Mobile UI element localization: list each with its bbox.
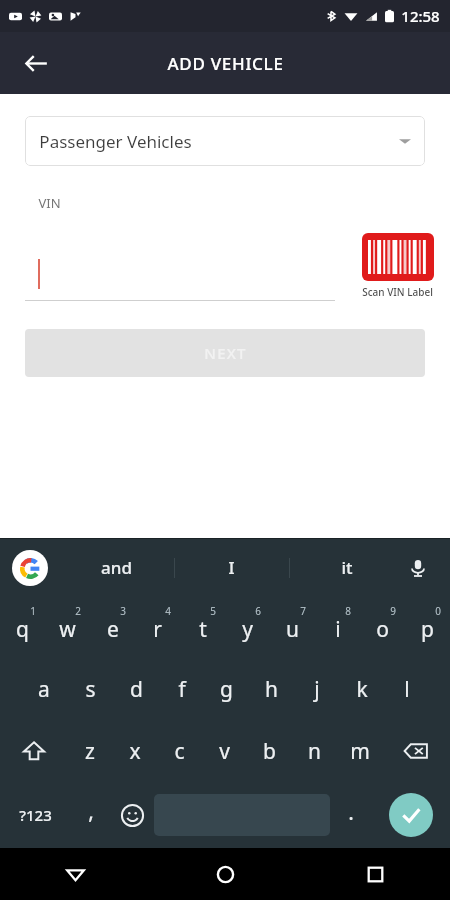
staticText: p (421, 615, 434, 644)
staticText: 0 (435, 604, 441, 618)
staticText: , (88, 797, 94, 826)
staticText: u (286, 615, 299, 644)
button[interactable]: w (45, 596, 90, 658)
staticText: b (263, 737, 276, 766)
staticText: r (153, 615, 162, 644)
button[interactable]: Enter (372, 782, 450, 848)
button[interactable]: x (112, 720, 157, 782)
button[interactable]: , (71, 782, 110, 848)
staticText: and (101, 556, 132, 579)
staticText: ADD VEHICLE (167, 52, 284, 75)
button[interactable]: h (249, 658, 294, 720)
button[interactable]: v (202, 720, 247, 782)
button[interactable]: e (90, 596, 135, 658)
staticText: 5 (210, 604, 216, 618)
button[interactable]: d (113, 658, 159, 720)
button[interactable]: q (0, 596, 45, 658)
button[interactable]: s (67, 658, 113, 720)
button[interactable]: b (247, 720, 292, 782)
staticText: m (350, 737, 370, 766)
staticText: 8 (345, 604, 351, 618)
staticText: Scan VIN Label (362, 285, 433, 299)
button[interactable]: o (360, 596, 405, 658)
staticText: 7 (300, 604, 306, 618)
button[interactable]: r (135, 596, 180, 658)
staticText: t (199, 615, 207, 644)
staticText: a (38, 675, 50, 704)
button[interactable]: Google (12, 550, 48, 586)
button[interactable]: c (157, 720, 202, 782)
button[interactable]: Voice input (398, 548, 438, 588)
button[interactable]: Passenger Vehicles (25, 116, 425, 166)
button[interactable]: and (58, 539, 174, 596)
staticText: c (174, 737, 185, 766)
button[interactable]: g (204, 658, 249, 720)
staticText: VIN (38, 194, 61, 212)
staticText: y (242, 615, 253, 644)
button[interactable]: z (67, 720, 112, 782)
staticText: I (228, 556, 235, 579)
button[interactable]: . (330, 782, 372, 848)
button[interactable]: Backspace (382, 720, 450, 782)
staticText: 9 (390, 604, 396, 618)
button[interactable]: it (289, 539, 404, 596)
staticText: NEXT (204, 343, 247, 363)
button[interactable]: Back (12, 39, 60, 87)
button[interactable]: Recent apps (300, 848, 450, 900)
staticText: f (178, 675, 186, 704)
button[interactable]: Emoji (110, 782, 154, 848)
staticText: j (314, 675, 320, 704)
staticText: o (376, 615, 389, 644)
button[interactable]: Home (150, 848, 300, 900)
button[interactable]: m (337, 720, 382, 782)
button[interactable]: j (294, 658, 339, 720)
staticText: k (356, 675, 368, 704)
button[interactable]: p (405, 596, 450, 658)
button[interactable]: i (315, 596, 360, 658)
staticText: g (220, 675, 233, 704)
staticText: it (341, 556, 353, 579)
staticText: 2 (75, 604, 81, 618)
staticText: n (308, 737, 321, 766)
button[interactable]: a (21, 658, 67, 720)
button[interactable]: f (159, 658, 204, 720)
button[interactable]: k (339, 658, 384, 720)
staticText: 12:58 (401, 6, 440, 26)
staticText: z (85, 737, 95, 766)
staticText: l (404, 675, 410, 704)
staticText: 1 (30, 604, 36, 618)
staticText: 6 (255, 604, 261, 618)
staticText: Passenger Vehicles (39, 130, 192, 153)
staticText: s (85, 675, 96, 704)
button[interactable]: n (292, 720, 337, 782)
staticText: . (348, 798, 354, 827)
staticText: e (107, 615, 119, 644)
staticText: 3 (120, 604, 126, 618)
staticText: h (265, 675, 278, 704)
button[interactable]: Back (0, 848, 150, 900)
button[interactable]: Shift (0, 720, 67, 782)
button[interactable]: l (384, 658, 429, 720)
staticText: d (130, 675, 143, 704)
button[interactable]: y (225, 596, 270, 658)
button[interactable]: ?123 (0, 782, 71, 848)
staticText: q (16, 615, 29, 644)
staticText: x (129, 737, 141, 766)
button[interactable]: I (174, 539, 289, 596)
button[interactable]: u (270, 596, 315, 658)
staticText: i (335, 615, 341, 644)
staticText: v (219, 737, 230, 766)
button[interactable]: t (180, 596, 225, 658)
staticText: w (59, 615, 76, 644)
button[interactable]: Scan VIN Label (362, 233, 434, 281)
staticText: 4 (165, 604, 171, 618)
staticText: ?123 (19, 805, 52, 825)
